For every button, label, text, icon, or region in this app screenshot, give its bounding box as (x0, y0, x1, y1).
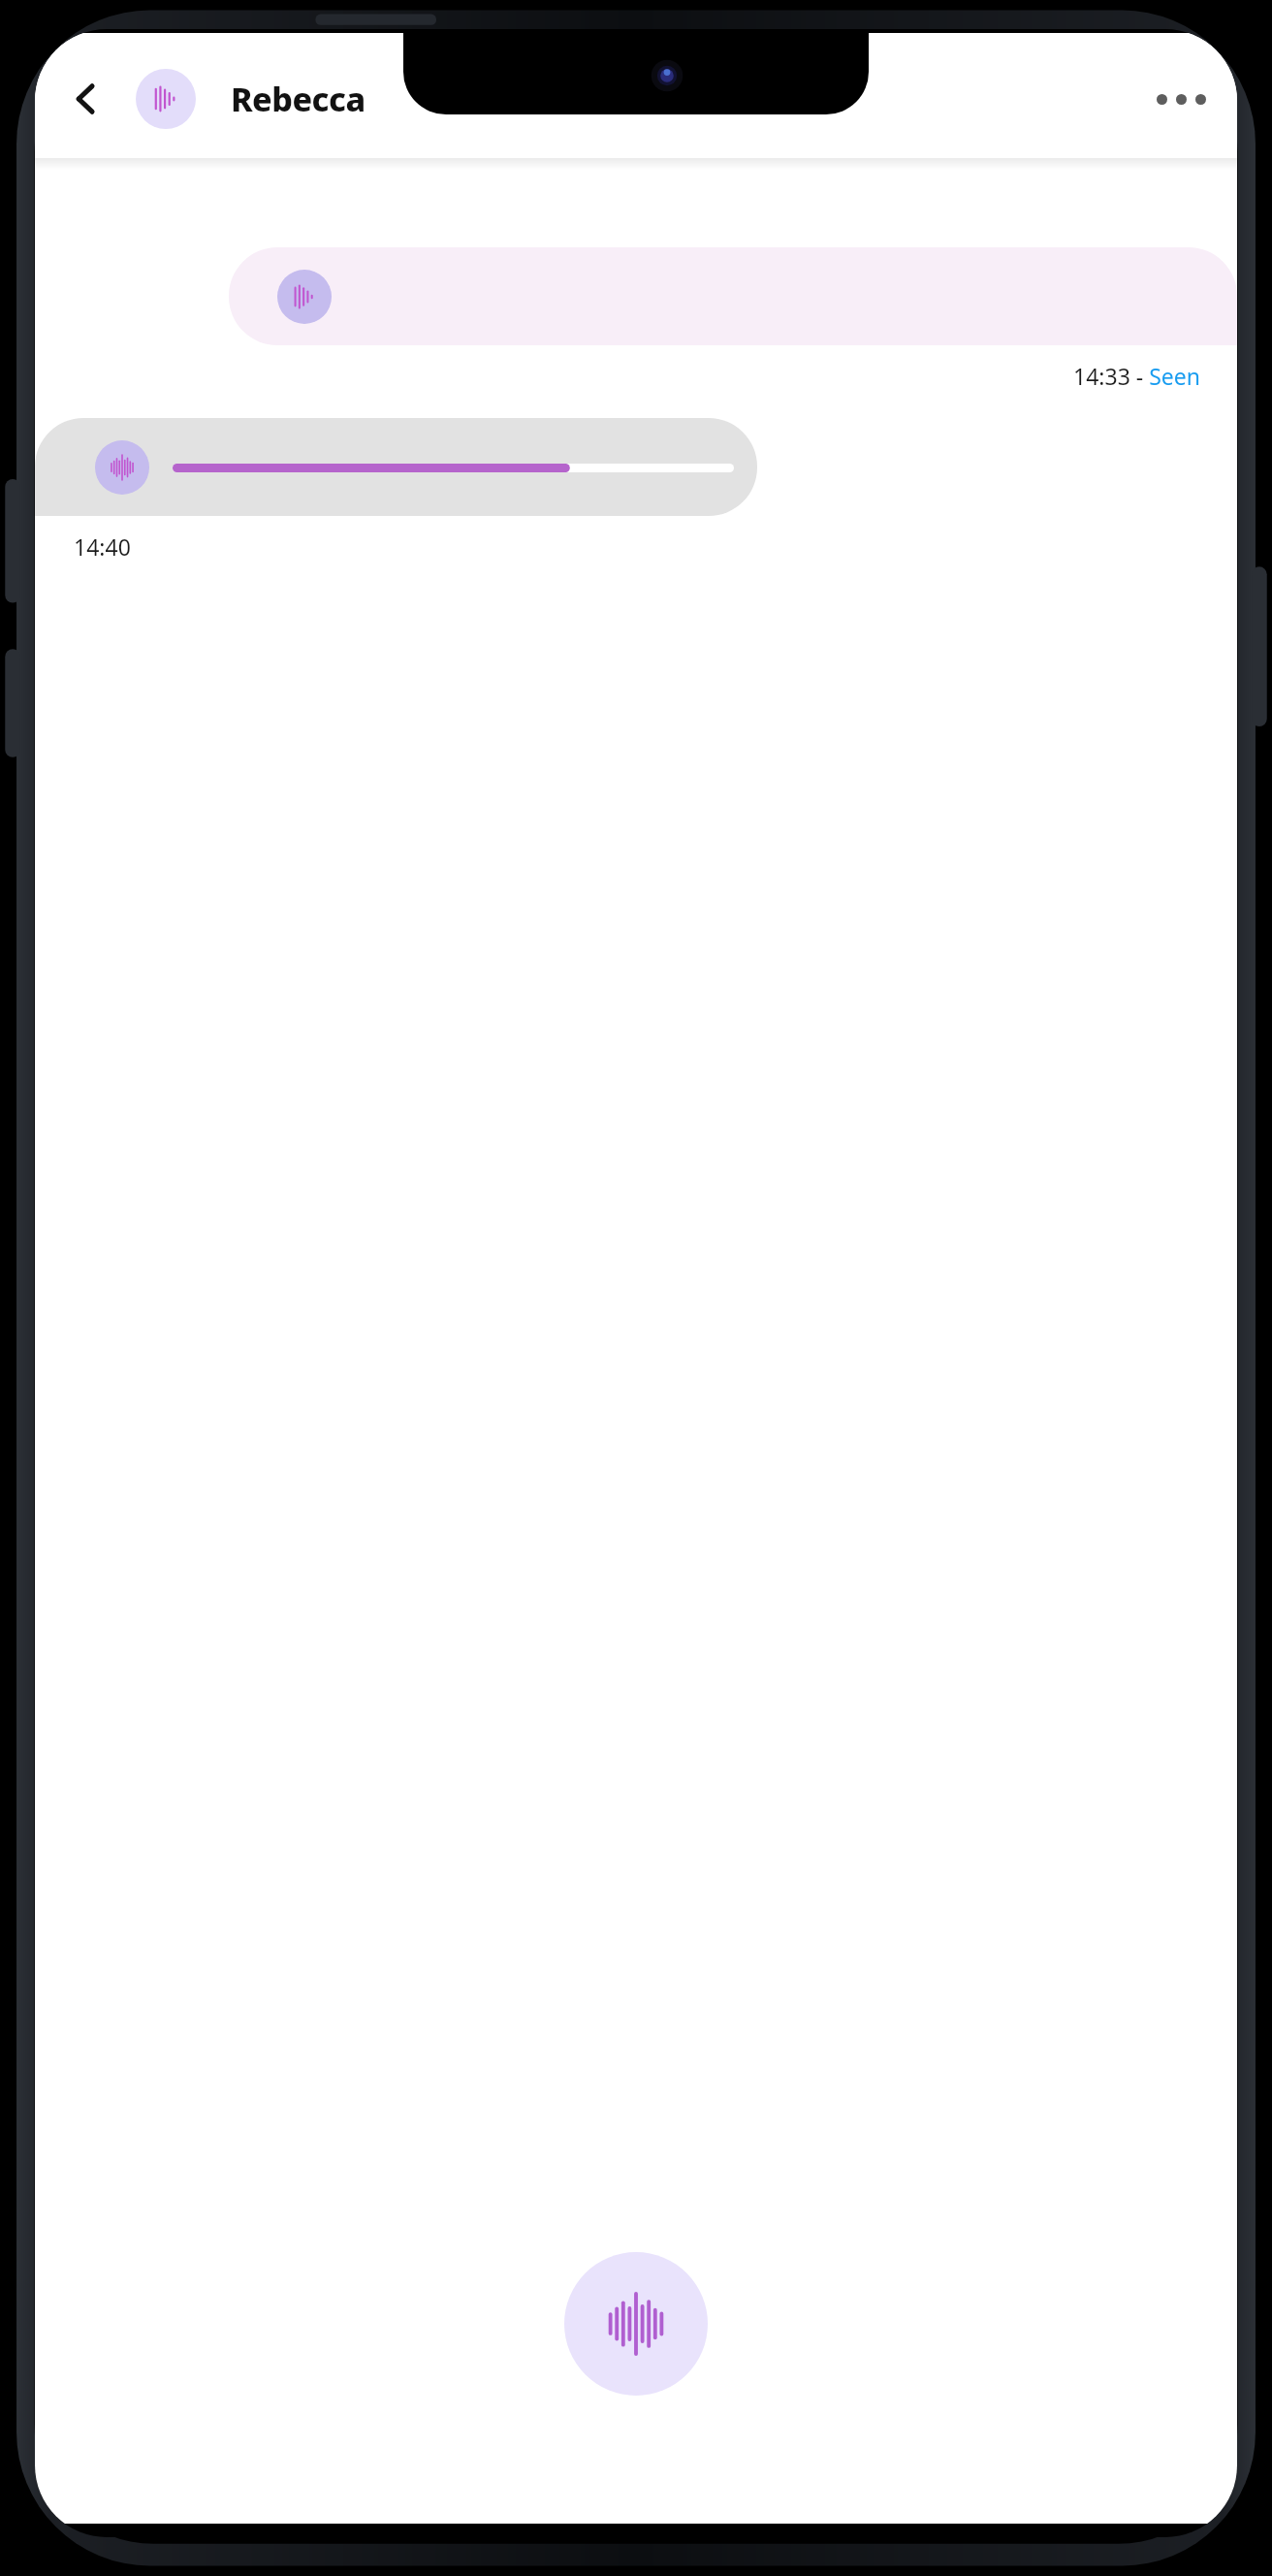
staticText: 14:33 - Seen (1073, 361, 1200, 391)
staticText: 14:40 (74, 531, 131, 562)
button[interactable]: Record voice message (564, 2252, 708, 2396)
button[interactable]: Play voice message sent at 14:33 (229, 247, 1237, 345)
button[interactable]: Back (60, 73, 112, 125)
button[interactable]: Play voice message received at 14:40 (35, 418, 757, 516)
button[interactable]: More options (1150, 68, 1212, 130)
staticText: Rebecca (231, 77, 366, 121)
button[interactable]: Contact avatar (136, 69, 196, 129)
